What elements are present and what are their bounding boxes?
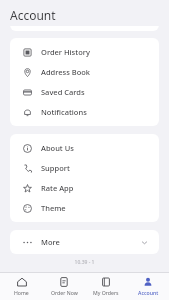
button[interactable]: Sign In [10, 12, 159, 31]
staticText: Account [10, 7, 56, 23]
staticText: Saved Cards [41, 87, 85, 97]
button[interactable]: Support [10, 158, 159, 178]
button[interactable]: Address Book [10, 62, 159, 82]
button[interactable]: About Us [10, 138, 159, 158]
staticText: About Us [41, 143, 74, 153]
staticText: Home [14, 289, 29, 296]
staticText: Address Book [41, 67, 91, 77]
staticText: My Orders [93, 289, 119, 296]
staticText: Notifications [41, 107, 87, 117]
staticText: Order Now [51, 289, 78, 296]
button[interactable]: Order Now [43, 273, 85, 300]
button[interactable]: Rate App [10, 178, 159, 198]
button[interactable]: Theme [10, 198, 159, 218]
button[interactable]: Notifications [10, 102, 159, 122]
button[interactable]: My Orders [85, 273, 127, 300]
staticText: 10.39 - 1 [0, 259, 169, 266]
staticText: More [41, 237, 60, 247]
staticText: Order History [41, 47, 90, 57]
button[interactable]: Order History [10, 42, 159, 62]
button[interactable]: Home [0, 273, 43, 300]
staticText: Theme [41, 203, 66, 213]
button[interactable]: Account [127, 273, 169, 300]
staticText: Account [138, 289, 159, 296]
button[interactable]: Saved Cards [10, 82, 159, 102]
staticText: Sign In [38, 13, 65, 24]
staticText: Rate App [41, 183, 74, 193]
button[interactable]: More [10, 230, 159, 254]
staticText: Support [41, 163, 70, 173]
